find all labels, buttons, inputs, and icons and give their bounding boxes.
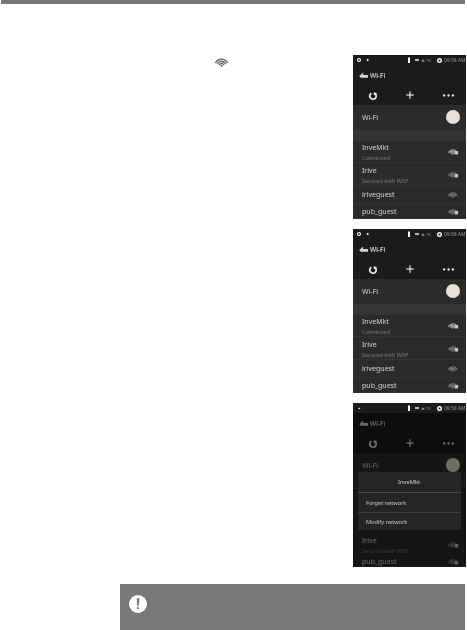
staticText: 09:58 AM — [444, 57, 466, 64]
staticText: pub_guest — [362, 207, 397, 217]
button[interactable]: More options — [428, 260, 466, 279]
button[interactable]: Refresh — [353, 86, 390, 105]
staticText: Wi-Fi — [370, 245, 386, 254]
staticText: 1% — [426, 232, 432, 237]
button[interactable]: Wi-Fi — [353, 105, 466, 130]
staticText: Wi-Fi — [362, 113, 379, 123]
staticText: pub_guest — [362, 557, 397, 567]
button[interactable]: Wi-Fi — [353, 279, 466, 304]
staticText: InveMkt — [362, 143, 389, 153]
staticText: Secured with WEP — [362, 547, 409, 554]
button[interactable]: Add network — [390, 86, 428, 105]
button[interactable]: InveMkt — [353, 315, 466, 337]
button[interactable]: Add network — [390, 260, 428, 279]
button[interactable]: Wi-Fi — [353, 453, 466, 478]
button[interactable]: iriveguest — [353, 511, 466, 534]
button[interactable]: iriveguest — [353, 360, 466, 378]
staticText: InveMkt — [362, 317, 389, 327]
staticText: iriveguest — [362, 190, 395, 200]
button[interactable]: Irive — [353, 534, 466, 556]
button[interactable]: InveMkt — [353, 489, 466, 511]
button[interactable]: Refresh — [353, 434, 390, 453]
staticText: pub_guest — [362, 381, 397, 391]
button[interactable]: Irive — [353, 163, 466, 186]
staticText: Irive — [362, 340, 377, 350]
button[interactable]: Wi-Fi — [353, 65, 466, 86]
button[interactable]: Wi-Fi — [353, 413, 466, 434]
staticText: 09:58 AM — [444, 405, 466, 412]
button[interactable]: Add network — [390, 434, 428, 453]
staticText: Wi-Fi — [370, 419, 386, 428]
staticText: iriveguest — [362, 364, 395, 374]
button[interactable]: More options — [428, 86, 466, 105]
staticText: Connected — [362, 328, 390, 335]
staticText: Wi-Fi — [362, 287, 379, 297]
staticText: Irive — [362, 536, 377, 546]
button[interactable]: More options — [428, 434, 466, 453]
button[interactable]: Refresh — [353, 260, 390, 279]
button[interactable]: pub_guest — [353, 378, 466, 393]
staticText: Secured with WEP — [362, 351, 409, 358]
button[interactable]: iriveguest — [353, 186, 466, 204]
staticText: Connected — [362, 502, 390, 509]
staticText: 1% — [426, 58, 432, 63]
button[interactable]: pub_guest — [353, 556, 466, 567]
staticText: InveMkt — [362, 491, 389, 501]
staticText: 1% — [426, 406, 432, 411]
staticText: Secured with WEP — [362, 177, 409, 184]
staticText: InveMkt — [398, 478, 421, 486]
button[interactable]: Modify network — [358, 513, 461, 530]
staticText: Modify network — [366, 518, 408, 526]
staticText: Connected — [362, 154, 390, 161]
button[interactable]: InveMkt — [353, 141, 466, 163]
staticText: iriveguest — [362, 518, 395, 528]
button[interactable]: Wi-Fi — [353, 239, 466, 260]
staticText: 09:58 AM — [444, 231, 466, 238]
button[interactable]: pub_guest — [353, 204, 466, 219]
button[interactable]: Irive — [353, 337, 466, 360]
staticText: Wi-Fi — [370, 71, 386, 80]
button[interactable]: Forget network — [358, 493, 461, 513]
staticText: Forget network — [366, 499, 407, 507]
staticText: Irive — [362, 166, 377, 176]
staticText: Wi-Fi — [362, 461, 379, 471]
